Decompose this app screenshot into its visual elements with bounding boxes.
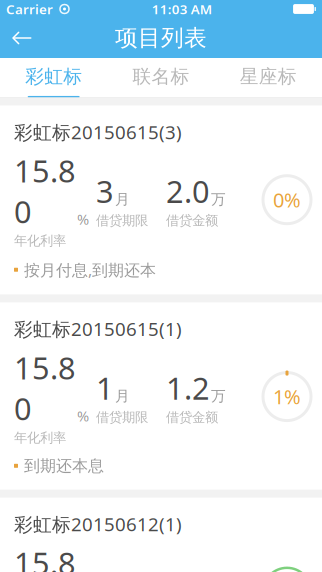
button[interactable]: 彩虹标20150615(1) bbox=[0, 302, 322, 490]
staticText: 彩虹标20150615(1) bbox=[14, 316, 182, 341]
staticText: % bbox=[77, 209, 89, 229]
staticText: 联名标 bbox=[132, 65, 189, 88]
staticText: 1.2 bbox=[166, 367, 210, 408]
staticText: 彩虹标 bbox=[25, 65, 82, 88]
staticText: 15.80 bbox=[14, 542, 76, 572]
staticText: 1% bbox=[273, 383, 301, 410]
staticText: 0% bbox=[273, 186, 301, 213]
staticText: 3 bbox=[96, 171, 114, 211]
button[interactable]: 联名标 bbox=[107, 58, 215, 97]
staticText: 借贷期限 bbox=[96, 409, 148, 426]
button[interactable]: 彩虹标20150615(3) bbox=[0, 105, 322, 294]
staticText: Carrier bbox=[6, 0, 53, 18]
staticText: 万 bbox=[211, 190, 226, 208]
button[interactable]: 星座标 bbox=[215, 58, 322, 97]
staticText: 彩虹标20150615(3) bbox=[14, 119, 182, 144]
staticText: 11:03 AM bbox=[152, 0, 212, 18]
staticText: 星座标 bbox=[240, 65, 297, 88]
staticText: 按月付息,到期还本 bbox=[24, 259, 156, 280]
staticText: 15.80 bbox=[14, 347, 76, 429]
staticText: 项目列表 bbox=[115, 24, 207, 52]
staticText: 年化利率 bbox=[14, 233, 66, 249]
staticText: 年化利率 bbox=[14, 430, 66, 446]
staticText: % bbox=[77, 406, 89, 426]
staticText: 借贷金额 bbox=[166, 409, 218, 426]
staticText: 借贷期限 bbox=[96, 212, 148, 229]
staticText: 月 bbox=[115, 190, 130, 208]
staticText: 万 bbox=[211, 387, 226, 405]
staticText: 月 bbox=[115, 387, 130, 405]
staticText: 借贷金额 bbox=[166, 212, 218, 229]
staticText: 彩虹标20150612(1) bbox=[14, 512, 182, 536]
button[interactable]: 彩虹标 bbox=[0, 58, 107, 97]
staticText: 到期还本息 bbox=[24, 456, 104, 476]
button[interactable]: Back bbox=[0, 18, 44, 58]
staticText: 2.0 bbox=[166, 171, 210, 211]
button[interactable]: 彩虹标20150612(1) bbox=[0, 498, 322, 572]
staticText: 15.80 bbox=[14, 150, 76, 232]
staticText: 1 bbox=[96, 367, 114, 408]
